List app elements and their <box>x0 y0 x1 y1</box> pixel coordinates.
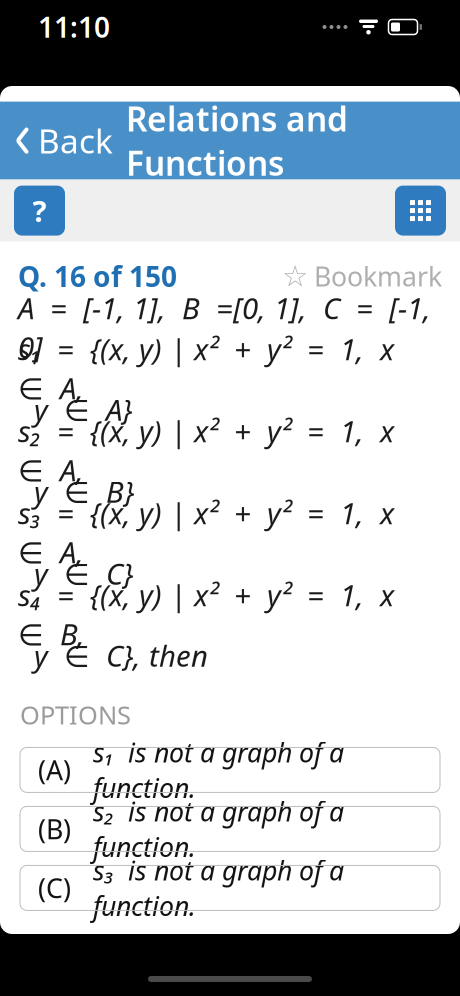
staticText: y ∈ B} <box>18 472 134 511</box>
staticText: Back <box>38 118 113 163</box>
staticText: Bookmark <box>314 258 442 294</box>
button[interactable]: (A) <box>20 747 440 792</box>
staticText: (A) <box>38 752 71 788</box>
button[interactable]: Help <box>14 186 65 236</box>
button[interactable]: (B) <box>20 806 440 851</box>
staticText: (B) <box>38 811 71 847</box>
button[interactable]: Question grid <box>395 186 446 236</box>
staticText: ? <box>32 191 46 230</box>
button[interactable]: Back <box>0 106 113 175</box>
button[interactable]: (C) <box>20 865 440 910</box>
staticText: s₃ = {(x, y) | x² + y² = 1, x ∈ A, <box>18 493 402 571</box>
staticText: ☆ <box>282 259 308 293</box>
staticText: (C) <box>38 870 71 906</box>
staticText: y ∈ C} <box>18 554 133 593</box>
staticText: Q. 16 of 150 <box>18 258 177 295</box>
staticText: s₂ = {(x, y) | x² + y² = 1, x ∈ A, <box>18 411 402 489</box>
staticText: s₁ = {(x, y) | x² + y² = 1, x ∈ A, <box>18 329 402 407</box>
button[interactable]: ☆ <box>282 258 442 294</box>
staticText: s₄ = {(x, y) | x² + y² = 1, x ∈ B, <box>18 575 402 653</box>
staticText: s₁ is not a graph of a function. <box>93 734 344 805</box>
staticText: y ∈ C}, then <box>18 636 208 675</box>
staticText: y ∈ A} <box>18 390 132 429</box>
staticText: s₂ is not a graph of a function. <box>93 793 344 864</box>
staticText: Relations and Functions <box>126 96 348 185</box>
staticText: A = [−1, 1], B =[0, 1], C = [−1, 0] <box>18 288 431 366</box>
staticText: s₃ is not a graph of a function. <box>93 852 344 923</box>
staticText: OPTIONS <box>20 698 131 731</box>
staticText: 11:10 <box>38 8 110 46</box>
